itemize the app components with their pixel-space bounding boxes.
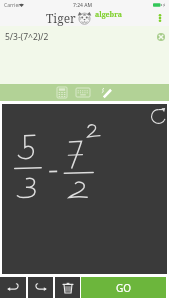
button[interactable]: Undo	[0, 277, 26, 298]
button[interactable]: Keyboard	[71, 84, 95, 101]
staticText: algebra	[95, 10, 122, 20]
staticText: Tiger	[46, 10, 76, 26]
button[interactable]: Delete	[55, 277, 80, 298]
staticText: GO	[116, 281, 132, 295]
button[interactable]: More options	[151, 10, 169, 26]
button[interactable]: Redo	[28, 277, 53, 298]
button[interactable]: GO	[81, 277, 166, 298]
button[interactable]: Clear	[154, 30, 167, 43]
staticText: Carrier	[4, 2, 21, 9]
button[interactable]: Refresh	[149, 107, 168, 126]
button[interactable]: Calculator	[52, 84, 71, 101]
staticText: 7:24 AM	[73, 2, 93, 9]
button[interactable]: Draw	[95, 84, 118, 101]
staticText: 5/3-(7^2)/2	[5, 31, 49, 43]
